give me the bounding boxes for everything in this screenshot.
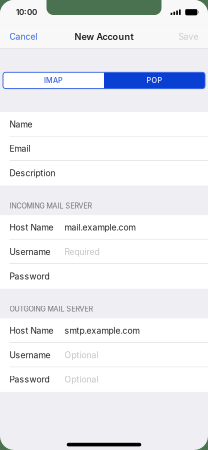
button[interactable]: Save	[169, 24, 208, 49]
button[interactable]: Description	[0, 161, 208, 185]
button[interactable]: Name	[0, 112, 208, 136]
staticText: mail.example.com	[64, 222, 135, 233]
staticText: Email	[9, 143, 30, 154]
staticText: Optional	[64, 374, 98, 385]
button[interactable]: Host Name	[0, 318, 208, 343]
staticText: Username	[9, 350, 50, 360]
staticText: Description	[9, 168, 55, 178]
staticText: Required	[64, 247, 99, 257]
button[interactable]: Username	[0, 343, 208, 367]
staticText: Password	[9, 271, 49, 281]
button[interactable]: Cancel	[0, 24, 47, 49]
button[interactable]: Host Name	[0, 215, 208, 240]
staticText: OUTGOING MAIL SERVER	[9, 305, 93, 313]
staticText: Cancel	[9, 31, 37, 42]
staticText: INCOMING MAIL SERVER	[9, 202, 92, 210]
staticText: Host Name	[9, 325, 53, 336]
staticText: Name	[9, 119, 32, 129]
staticText: POP	[146, 76, 162, 85]
button[interactable]: Password	[0, 264, 208, 288]
staticText: New Account	[74, 31, 133, 42]
staticText: Username	[9, 247, 50, 257]
staticText: Optional	[64, 350, 98, 360]
button[interactable]: Email	[0, 136, 208, 161]
staticText: Password	[9, 374, 49, 385]
button[interactable]: POP	[104, 72, 205, 89]
staticText: IMAP	[44, 76, 63, 85]
button[interactable]: IMAP	[3, 72, 104, 89]
staticText: Save	[178, 31, 198, 42]
button[interactable]: Username	[0, 240, 208, 264]
staticText: Host Name	[9, 222, 53, 233]
staticText: 10:00	[16, 7, 37, 17]
button[interactable]: Password	[0, 367, 208, 392]
staticText: smtp.example.com	[64, 325, 139, 336]
